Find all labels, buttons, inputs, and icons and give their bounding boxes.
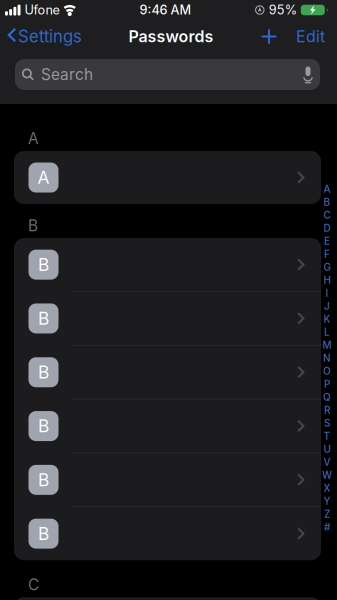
staticText: B <box>38 416 49 437</box>
staticText: Settings <box>18 26 82 47</box>
staticText: Q <box>323 391 331 403</box>
staticText: X <box>323 482 330 494</box>
staticText: A <box>37 167 49 188</box>
staticText: D <box>323 222 330 234</box>
button[interactable]: A <box>14 151 321 204</box>
staticText: J <box>324 300 330 312</box>
staticText: B <box>38 469 49 490</box>
button[interactable]: B <box>14 399 321 453</box>
staticText: 95% <box>269 2 297 18</box>
staticText: S <box>324 417 330 429</box>
staticText: T <box>323 430 330 442</box>
staticText: L <box>324 326 330 338</box>
staticText: N <box>323 352 331 364</box>
staticText: U <box>323 443 330 455</box>
staticText: A <box>28 129 39 148</box>
staticText: V <box>323 456 330 468</box>
button[interactable]: Settings <box>0 20 88 50</box>
staticText: Y <box>323 495 330 507</box>
button[interactable]: Search <box>15 59 320 90</box>
staticText: M <box>322 339 331 351</box>
staticText: W <box>322 469 332 481</box>
staticText: O <box>323 365 331 377</box>
button[interactable]: B <box>14 238 321 291</box>
staticText: C <box>28 575 39 594</box>
staticText: C <box>323 209 330 221</box>
staticText: Passwords <box>128 27 213 46</box>
staticText: B <box>38 308 49 329</box>
button[interactable]: Edit <box>283 20 337 50</box>
staticText: Ufone <box>24 2 59 18</box>
staticText: B <box>38 254 49 275</box>
staticText: B <box>28 216 38 235</box>
button[interactable]: B <box>14 346 321 399</box>
staticText: A <box>323 183 330 195</box>
staticText: B <box>38 523 49 544</box>
staticText: Edit <box>296 27 325 46</box>
staticText: I <box>325 287 328 299</box>
staticText: Z <box>324 508 330 520</box>
button[interactable]: Add password <box>251 20 283 50</box>
staticText: K <box>323 313 330 325</box>
staticText: F <box>324 248 330 260</box>
staticText: # <box>324 521 330 533</box>
button[interactable]: B <box>14 507 321 560</box>
staticText: Search <box>41 65 93 84</box>
staticText: B <box>323 196 330 208</box>
staticText: B <box>38 362 49 383</box>
staticText: R <box>324 404 330 416</box>
staticText: P <box>324 378 330 390</box>
staticText: G <box>323 261 330 273</box>
staticText: E <box>324 235 330 247</box>
staticText: 9:46 AM <box>139 2 191 18</box>
button[interactable]: B <box>14 292 321 345</box>
button[interactable]: B <box>14 453 321 506</box>
staticText: H <box>323 274 330 286</box>
button[interactable]: C <box>14 597 321 600</box>
